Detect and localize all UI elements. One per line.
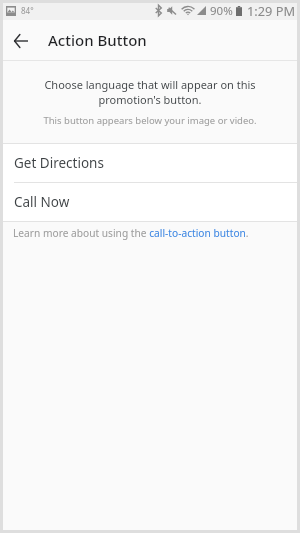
staticText: This button appears below your image or … [43,114,257,127]
button[interactable]: Call Now [3,183,297,221]
staticText: Call Now [14,193,70,211]
staticText: Action Button [48,30,147,50]
staticText: Learn more about using the call-to-actio… [13,226,249,240]
button[interactable]: Back [5,25,36,56]
staticText: Get Directions [14,154,104,172]
staticText: 90% [210,3,233,19]
button[interactable]: Get Directions [3,144,297,182]
staticText: Choose language that will appear on this… [21,77,279,107]
staticText: 1:29 PM [247,2,296,19]
staticText: 84° [21,5,34,16]
